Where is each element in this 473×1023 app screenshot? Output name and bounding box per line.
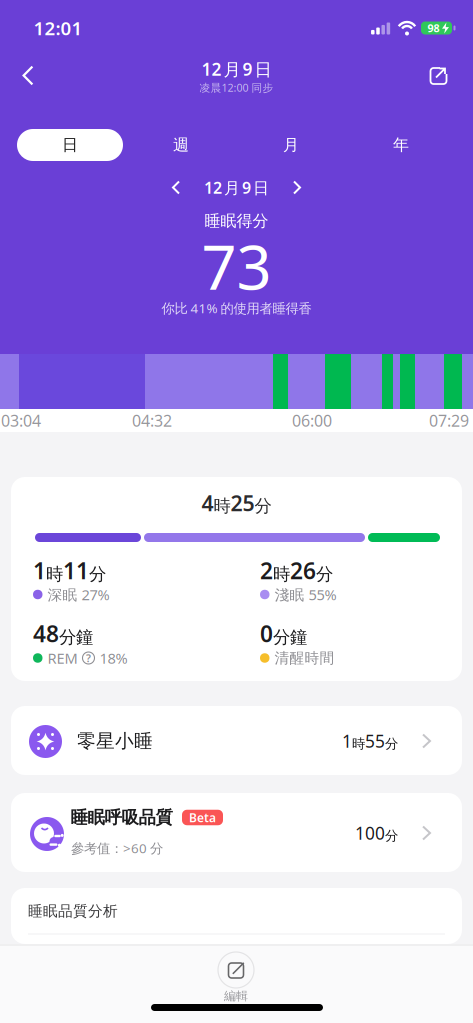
- staticText: 深眠 27%: [47, 585, 109, 604]
- staticText: 睡眠得分: [204, 211, 268, 231]
- staticText: 04:32: [132, 410, 172, 431]
- staticText: REM: [47, 648, 77, 668]
- staticText: 18%: [99, 648, 127, 668]
- staticText: 睡眠呼吸品質: [70, 807, 172, 828]
- staticText: 你比 41% 的使用者睡得香: [161, 299, 311, 317]
- staticText: 48分鐘: [33, 618, 93, 648]
- staticText: 06:00: [292, 410, 332, 431]
- button[interactable]: [10, 55, 46, 95]
- button[interactable]: 日: [17, 129, 123, 161]
- button[interactable]: [424, 60, 452, 88]
- staticText: 參考值：>60 分: [71, 839, 163, 857]
- staticText: 73: [201, 225, 271, 307]
- button[interactable]: 編輯: [200, 947, 272, 1005]
- staticText: 12 月 9 日: [201, 57, 271, 80]
- staticText: 零星小睡: [77, 729, 153, 752]
- button[interactable]: 零星小睡: [11, 706, 462, 775]
- button[interactable]: 月: [238, 129, 344, 161]
- staticText: 週: [173, 135, 189, 155]
- staticText: 凌晨12:00 同步: [199, 80, 273, 95]
- staticText: 清醒時間: [274, 649, 334, 667]
- button[interactable]: [162, 173, 190, 201]
- button[interactable]: 年: [348, 129, 454, 161]
- staticText: 編輯: [224, 989, 248, 1003]
- staticText: 1時55分: [342, 729, 398, 752]
- staticText: 睡眠品質分析: [28, 902, 118, 920]
- staticText: ?: [86, 651, 91, 665]
- staticText: 100分: [355, 821, 398, 844]
- button[interactable]: [283, 173, 311, 201]
- staticText: 月: [283, 135, 299, 155]
- staticText: 07:29: [429, 410, 469, 431]
- staticText: 0分鐘: [260, 618, 307, 648]
- staticText: 2時26分: [260, 555, 333, 585]
- staticText: 日: [62, 135, 78, 155]
- staticText: 1時11分: [33, 555, 106, 585]
- staticText: 年: [393, 135, 409, 155]
- staticText: 12:01: [33, 16, 82, 40]
- button[interactable]: 睡眠呼吸品質: [11, 793, 462, 872]
- button[interactable]: 週: [128, 129, 234, 161]
- staticText: 淺眠 55%: [274, 585, 336, 604]
- staticText: 4時25分: [201, 489, 271, 517]
- staticText: 03:04: [1, 410, 41, 431]
- staticText: 98: [427, 21, 439, 35]
- staticText: 12 月 9 日: [204, 177, 269, 198]
- staticText: Beta: [189, 809, 216, 825]
